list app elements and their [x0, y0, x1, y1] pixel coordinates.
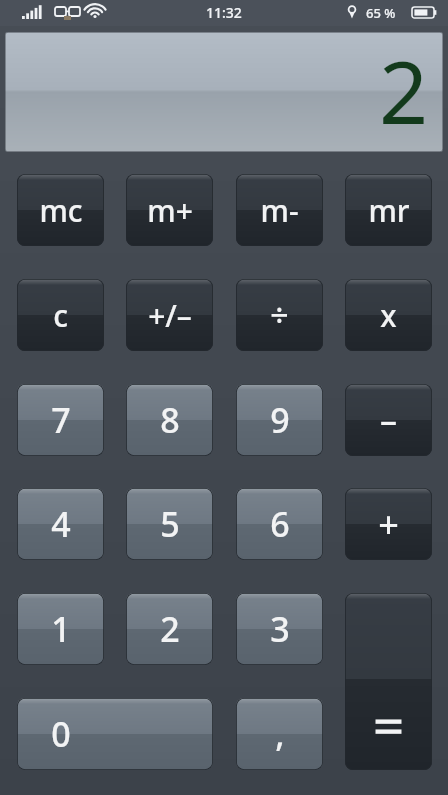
staticText: 7: [51, 397, 71, 443]
staticText: +: [378, 500, 399, 549]
staticText: 0: [51, 711, 71, 757]
staticText: 9: [270, 397, 290, 443]
button[interactable]: mc: [17, 174, 104, 246]
button[interactable]: 0: [17, 698, 213, 770]
button[interactable]: 3: [236, 593, 323, 665]
button[interactable]: Equals: [345, 593, 432, 770]
button[interactable]: c: [17, 279, 104, 351]
staticText: 4: [51, 501, 71, 547]
staticText: c: [53, 295, 68, 336]
button[interactable]: 4: [17, 488, 104, 560]
staticText: +/–: [148, 295, 192, 336]
staticText: x: [380, 295, 397, 336]
button[interactable]: 5: [126, 488, 213, 560]
staticText: mc: [39, 190, 83, 231]
button[interactable]: 8: [126, 384, 213, 456]
staticText: 5: [160, 501, 180, 547]
button[interactable]: mr: [345, 174, 432, 246]
button[interactable]: 7: [17, 384, 104, 456]
staticText: mr: [368, 190, 410, 231]
staticText: 1: [51, 606, 71, 652]
button[interactable]: 9: [236, 384, 323, 456]
staticText: m-: [260, 190, 299, 231]
staticText: 6: [270, 501, 290, 547]
staticText: 11:32: [206, 3, 242, 22]
button[interactable]: +/–: [126, 279, 213, 351]
staticText: ÷: [270, 293, 289, 337]
button[interactable]: m+: [126, 174, 213, 246]
staticText: 2: [160, 606, 180, 652]
staticText: 8: [160, 397, 180, 443]
button[interactable]: 6: [236, 488, 323, 560]
button[interactable]: Plus: [345, 488, 432, 560]
staticText: 3: [270, 606, 290, 652]
button[interactable]: 2: [126, 593, 213, 665]
button[interactable]: ,: [236, 698, 323, 770]
button[interactable]: Minus: [345, 384, 432, 456]
staticText: m+: [147, 190, 193, 231]
button[interactable]: ÷: [236, 279, 323, 351]
staticText: 2: [379, 32, 429, 146]
button[interactable]: x: [345, 279, 432, 351]
button[interactable]: m-: [236, 174, 323, 246]
staticText: ,: [275, 711, 285, 757]
button[interactable]: 1: [17, 593, 104, 665]
staticText: 65 %: [366, 4, 396, 22]
staticText: –: [380, 397, 397, 443]
